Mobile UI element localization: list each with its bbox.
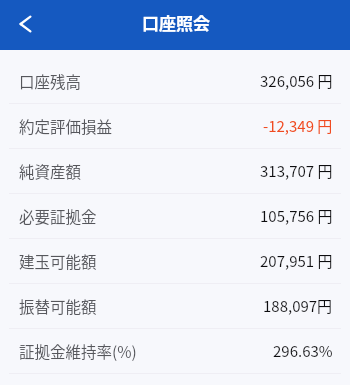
button[interactable]: Back — [0, 2, 46, 48]
staticText: 105,756 円 — [260, 205, 333, 227]
staticText: 証拠金維持率(%) — [19, 340, 137, 362]
staticText: 必要証拠金 — [19, 205, 97, 227]
staticText: 約定評価損益 — [19, 115, 113, 137]
staticText: 振替可能額 — [19, 295, 97, 317]
staticText: 313,707 円 — [260, 160, 333, 182]
staticText: 建玉可能額 — [19, 250, 97, 272]
button[interactable]: 約定評価損益 — [0, 104, 350, 148]
button[interactable]: 口座残高 — [0, 59, 350, 103]
staticText: 188,097円 — [263, 295, 333, 317]
button[interactable]: 必要証拠金 — [0, 194, 350, 238]
button[interactable]: 証拠金維持率(%) — [0, 329, 350, 373]
staticText: 純資産額 — [19, 160, 82, 182]
button[interactable]: 振替可能額 — [0, 284, 350, 328]
staticText: 207,951 円 — [260, 250, 333, 272]
staticText: 296.63% — [273, 340, 333, 362]
staticText: 326,056 円 — [260, 70, 333, 92]
staticText: -12,349 円 — [263, 115, 333, 137]
staticText: 口座残高 — [19, 70, 82, 92]
staticText: 口座照会 — [142, 10, 210, 35]
button[interactable]: 建玉可能額 — [0, 239, 350, 283]
button[interactable]: 純資産額 — [0, 149, 350, 193]
